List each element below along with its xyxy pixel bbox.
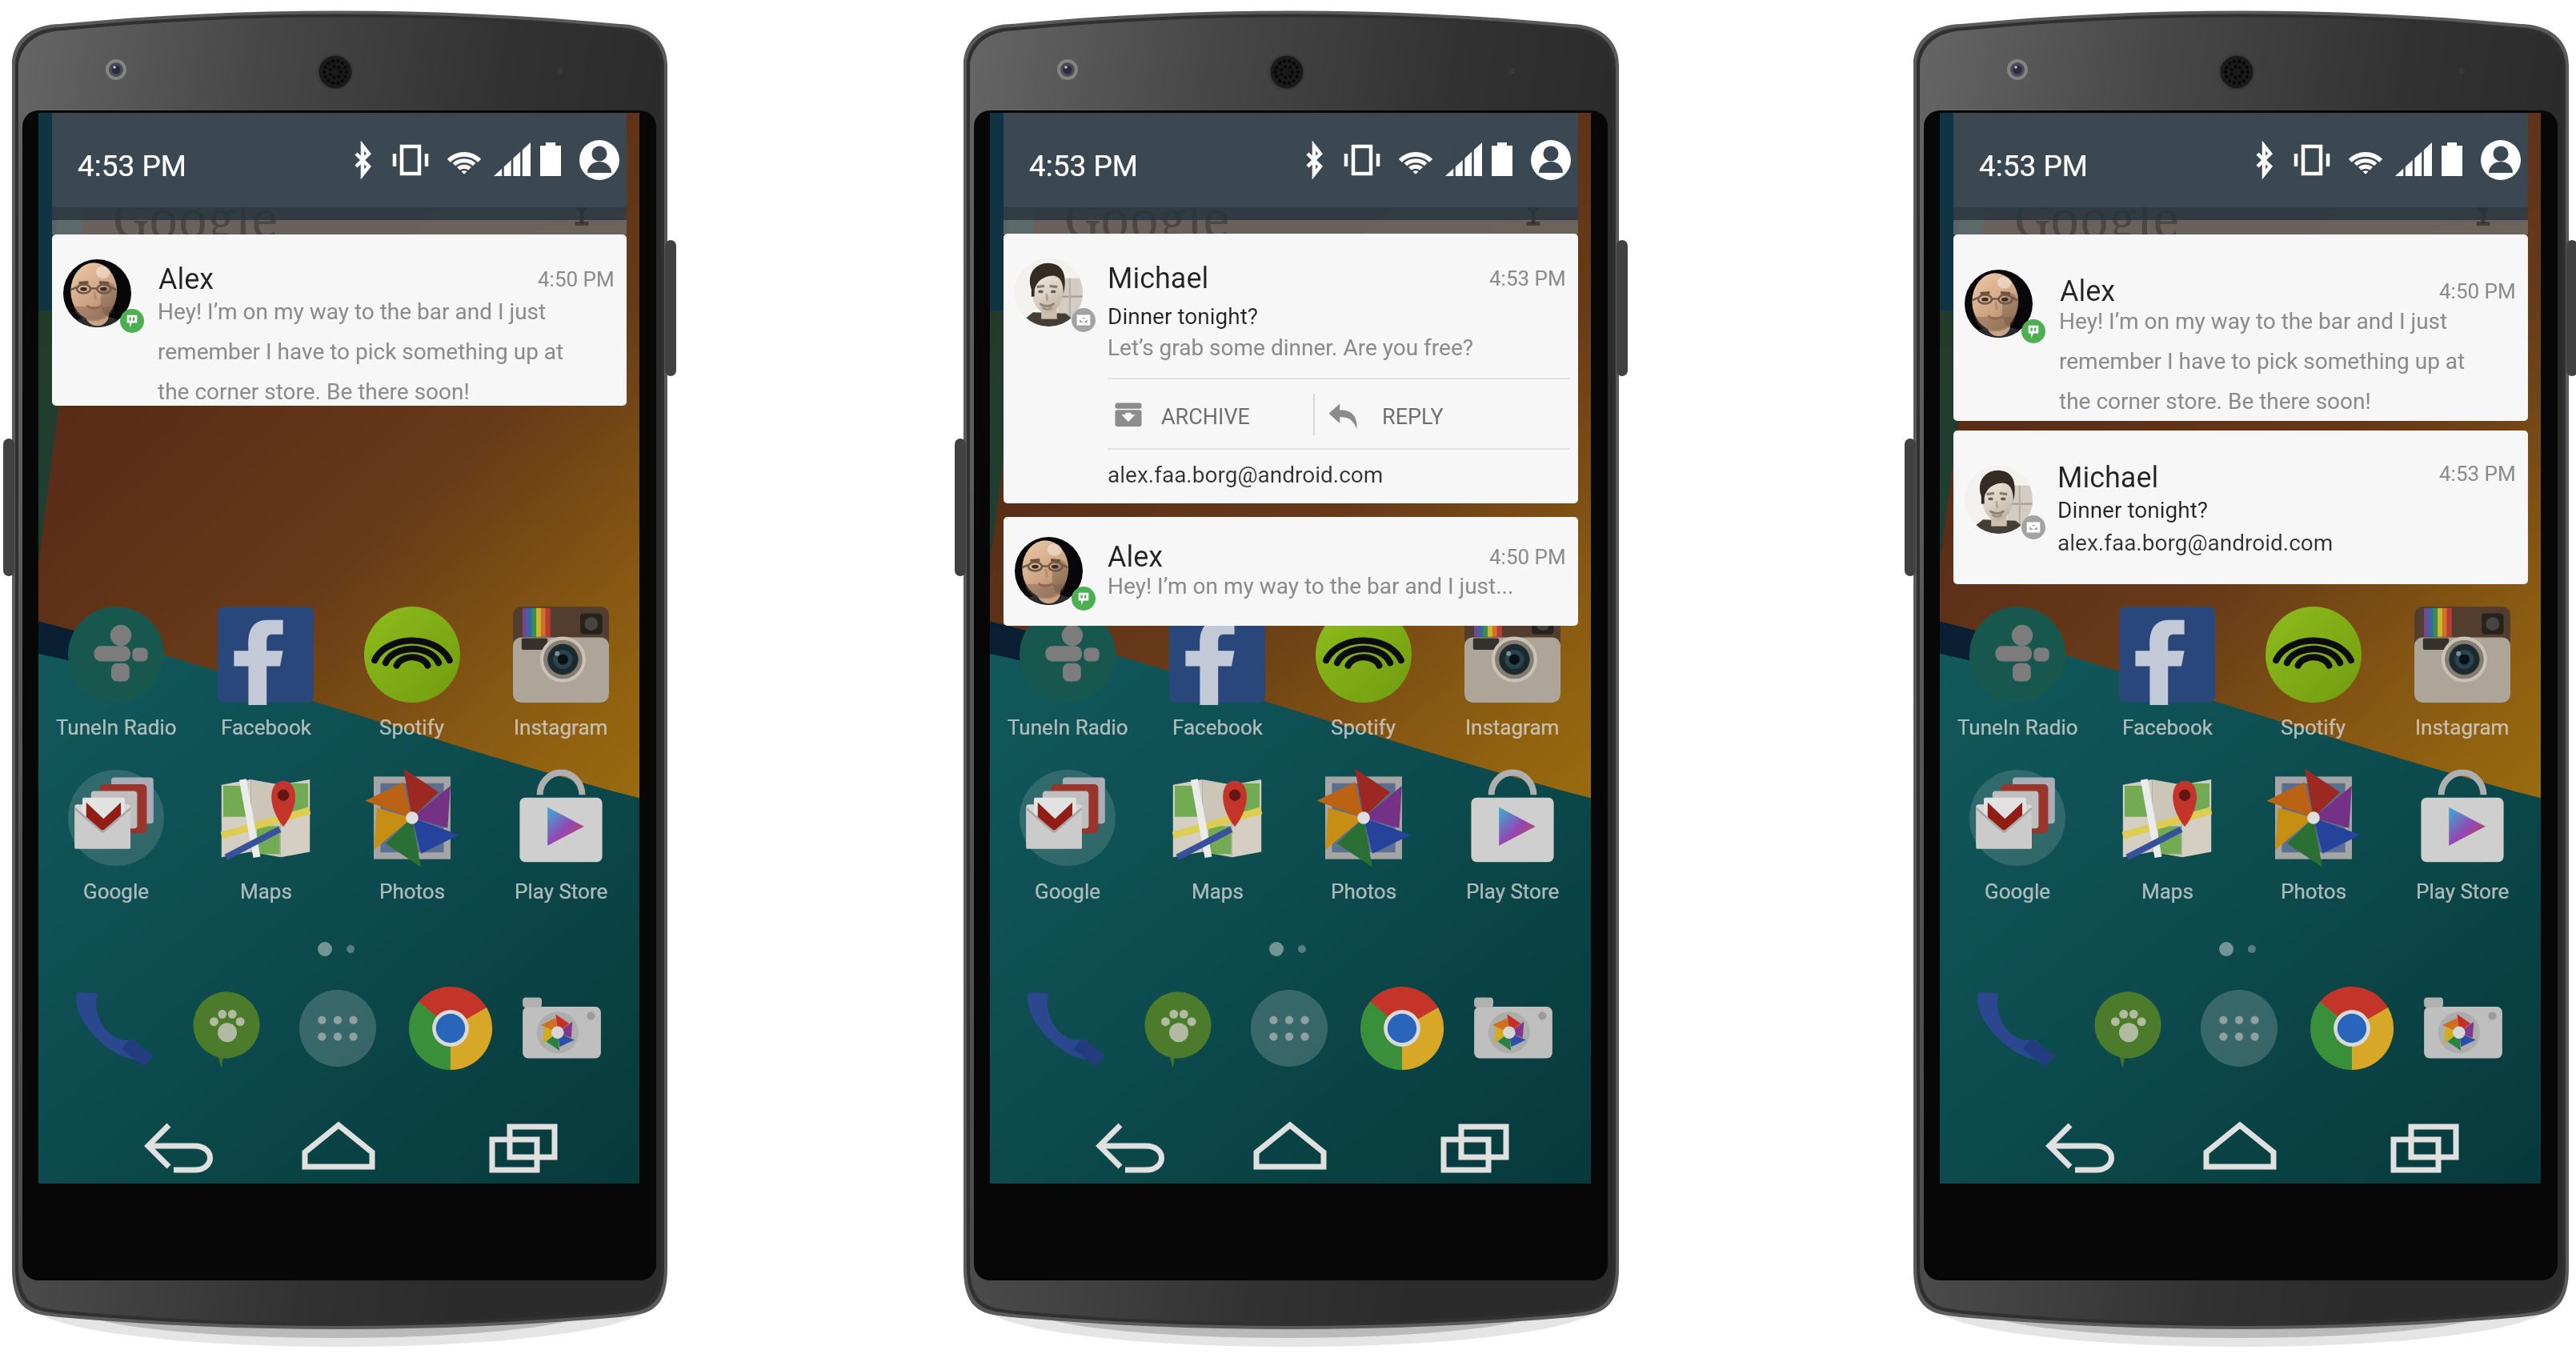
staticText: alex.faa.borg@android.com: [1108, 462, 1384, 488]
staticText: Hey! I’m on my way to the bar and I just…: [158, 298, 564, 404]
button[interactable]: Archive: [1108, 379, 1312, 448]
staticText: TuneIn Radio: [1008, 715, 1128, 739]
staticText: Let’s grab some dinner. Are you free?: [1108, 334, 1473, 361]
button[interactable]: Play Store: [2389, 759, 2536, 879]
staticText: 4:53 PM: [1029, 149, 1139, 183]
staticText: Alex: [158, 262, 214, 296]
button[interactable]: Status bar: [52, 113, 627, 207]
button[interactable]: Status bar: [1953, 113, 2528, 207]
button[interactable]: Spotify: [339, 595, 486, 715]
button[interactable]: Maps: [2093, 759, 2241, 879]
staticText: Spotify: [2281, 715, 2346, 739]
button[interactable]: Google search: [52, 193, 627, 234]
staticText: 4:53 PM: [1979, 149, 2089, 183]
staticText: Instagram: [1465, 715, 1560, 739]
button[interactable]: TuneIn Radio: [42, 595, 190, 715]
button[interactable]: Page indicator: [1254, 931, 1326, 967]
button[interactable]: Photos: [2240, 759, 2387, 879]
staticText: Google: [2013, 183, 2181, 253]
button[interactable]: Alex: [1004, 517, 1578, 626]
staticText: Instagram: [2415, 715, 2510, 739]
button[interactable]: TuneIn Radio: [994, 595, 1141, 715]
staticText: REPLY: [1382, 404, 1444, 430]
staticText: Google: [1035, 879, 1101, 903]
button[interactable]: Instagram: [1439, 595, 1586, 715]
button[interactable]: Recent apps: [2363, 1105, 2475, 1184]
button[interactable]: Apps: [1243, 982, 1336, 1075]
staticText: ARCHIVE: [1161, 404, 1250, 430]
staticText: Maps: [1192, 879, 1244, 903]
staticText: Play Store: [2416, 879, 2510, 903]
staticText: alex.faa.borg@android.com: [2057, 530, 2334, 556]
staticText: Google: [112, 183, 279, 253]
button[interactable]: Camera: [515, 982, 608, 1075]
button[interactable]: Back: [1068, 1105, 1180, 1184]
button[interactable]: Spotify: [2240, 595, 2387, 715]
button[interactable]: Photos: [1290, 759, 1437, 879]
button[interactable]: Recent apps: [1413, 1105, 1525, 1184]
button[interactable]: Spotify: [1290, 595, 1437, 715]
button[interactable]: Home: [282, 1105, 395, 1184]
button[interactable]: Google: [994, 759, 1141, 879]
button[interactable]: Messenger: [180, 982, 273, 1075]
staticText: Photos: [379, 879, 446, 903]
button[interactable]: Phone: [1020, 982, 1112, 1075]
button[interactable]: Chrome: [404, 982, 497, 1075]
staticText: Facebook: [221, 715, 311, 739]
staticText: Alex: [2060, 274, 2116, 308]
button[interactable]: Google search: [1004, 193, 1578, 234]
button[interactable]: Maps: [1144, 759, 1291, 879]
button[interactable]: Camera: [2417, 982, 2510, 1075]
button[interactable]: Recent apps: [462, 1105, 574, 1184]
button[interactable]: TuneIn Radio: [1944, 595, 2091, 715]
staticText: Play Store: [1466, 879, 1560, 903]
button[interactable]: Alex: [52, 234, 627, 406]
button[interactable]: Status bar: [1004, 113, 1578, 207]
button[interactable]: Google: [1944, 759, 2091, 879]
button[interactable]: Reply: [1320, 379, 1520, 448]
button[interactable]: Instagram: [487, 595, 635, 715]
button[interactable]: Facebook: [1144, 595, 1291, 715]
staticText: Google: [1985, 879, 2051, 903]
staticText: 4:53 PM: [78, 149, 187, 183]
button[interactable]: Back: [2017, 1105, 2129, 1184]
button[interactable]: Michael: [1004, 234, 1578, 503]
staticText: Spotify: [1331, 715, 1396, 739]
button[interactable]: Page indicator: [2204, 931, 2276, 967]
button[interactable]: Phone: [1969, 982, 2062, 1075]
staticText: Dinner tonight?: [2057, 497, 2209, 523]
button[interactable]: Google: [42, 759, 190, 879]
button[interactable]: Maps: [192, 759, 339, 879]
button[interactable]: Back: [116, 1105, 228, 1184]
button[interactable]: Phone: [68, 982, 161, 1075]
button[interactable]: Page indicator: [302, 931, 375, 967]
staticText: Michael: [1108, 262, 1209, 295]
button[interactable]: Play Store: [487, 759, 635, 879]
staticText: Facebook: [2122, 715, 2213, 739]
button[interactable]: Home: [2184, 1105, 2296, 1184]
staticText: Maps: [2141, 879, 2193, 903]
button[interactable]: Apps: [2193, 982, 2286, 1075]
staticText: TuneIn Radio: [1957, 715, 2078, 739]
button[interactable]: Chrome: [2306, 982, 2398, 1075]
staticText: TuneIn Radio: [56, 715, 177, 739]
button[interactable]: Home: [1234, 1105, 1346, 1184]
staticText: Alex: [1108, 540, 1164, 574]
button[interactable]: Michael: [1953, 431, 2528, 584]
button[interactable]: Messenger: [1132, 982, 1224, 1075]
button[interactable]: Facebook: [2093, 595, 2241, 715]
button[interactable]: Google search: [1953, 193, 2528, 234]
staticText: Michael: [2057, 461, 2159, 495]
button[interactable]: Facebook: [192, 595, 339, 715]
button[interactable]: Messenger: [2081, 982, 2174, 1075]
button[interactable]: Instagram: [2389, 595, 2536, 715]
button[interactable]: Camera: [1467, 982, 1560, 1075]
button[interactable]: Play Store: [1439, 759, 1586, 879]
staticText: Photos: [1331, 879, 1397, 903]
button[interactable]: Chrome: [1356, 982, 1448, 1075]
staticText: 4:50 PM: [2439, 279, 2516, 303]
button[interactable]: Apps: [291, 982, 384, 1075]
button[interactable]: Alex: [1953, 234, 2528, 421]
button[interactable]: Photos: [339, 759, 486, 879]
staticText: Hey! I’m on my way to the bar and I just…: [2059, 308, 2466, 414]
